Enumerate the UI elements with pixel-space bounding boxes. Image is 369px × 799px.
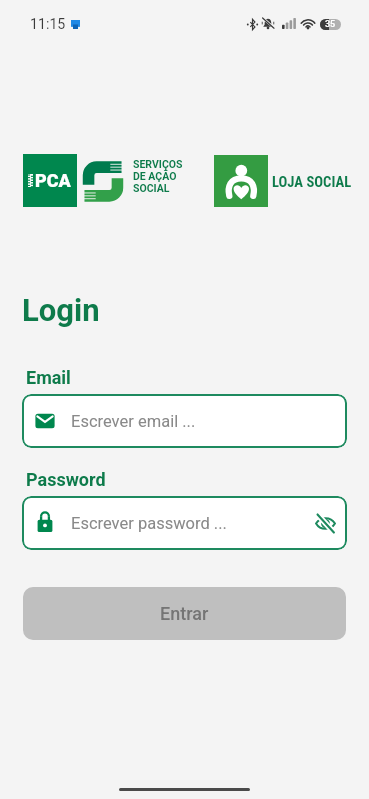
staticText: SOCIAL	[133, 182, 170, 194]
staticText: Login	[22, 292, 100, 328]
button[interactable]: Escrever email ...	[22, 394, 347, 448]
staticText: PCA	[35, 170, 71, 191]
staticText: Escrever email ...	[71, 412, 196, 431]
staticText: SERVIÇOS	[133, 158, 183, 170]
staticText: LOJA SOCIAL	[272, 173, 352, 190]
button[interactable]: Toggle password visibility	[307, 505, 343, 541]
staticText: Escrever password ...	[71, 514, 227, 533]
button[interactable]: Entrar	[23, 587, 346, 640]
staticText: DE AÇÃO	[133, 170, 177, 182]
button[interactable]: Escrever password ...	[22, 496, 347, 550]
staticText: 35	[325, 19, 336, 30]
staticText: Email	[26, 367, 71, 388]
staticText: Entrar	[160, 603, 209, 624]
staticText: Password	[26, 469, 106, 490]
staticText: 11:15	[30, 16, 66, 33]
